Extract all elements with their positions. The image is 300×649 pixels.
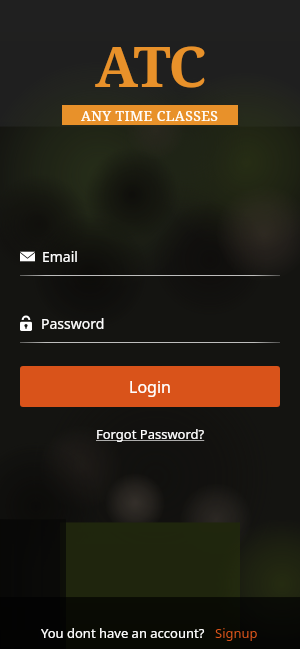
staticText: Login (129, 376, 171, 398)
staticText: Signup (215, 624, 258, 642)
button[interactable]: Signup (213, 622, 260, 644)
staticText: ANY TIME CLASSES (81, 106, 219, 125)
staticText: ATC (95, 26, 206, 104)
staticText: Forgot Password? (96, 425, 205, 443)
button[interactable]: Forgot Password? (92, 423, 209, 445)
button[interactable]: Password (20, 311, 280, 335)
staticText: Password (41, 314, 105, 333)
staticText: You dont have an account? (41, 624, 205, 642)
button[interactable]: Login (20, 366, 280, 407)
staticText: Email (42, 247, 78, 266)
button[interactable]: Email (20, 244, 280, 268)
